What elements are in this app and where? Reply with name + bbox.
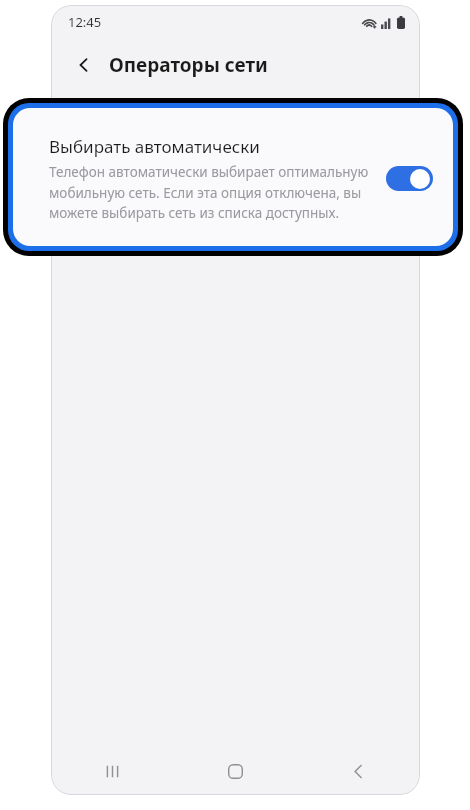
button[interactable]: Recents (51, 747, 174, 795)
staticText: Выбирать автоматически (49, 135, 260, 158)
button[interactable]: Выбирать автоматически (13, 108, 453, 246)
staticText: Операторы сети (109, 52, 268, 78)
button[interactable]: Выбирать автоматически (386, 166, 433, 191)
button[interactable]: Home (174, 747, 297, 795)
staticText: 12:45 (68, 13, 102, 31)
button[interactable]: Back (69, 50, 99, 80)
staticText: Телефон автоматически выбирает оптимальн… (49, 163, 374, 222)
button[interactable]: Back (297, 747, 420, 795)
